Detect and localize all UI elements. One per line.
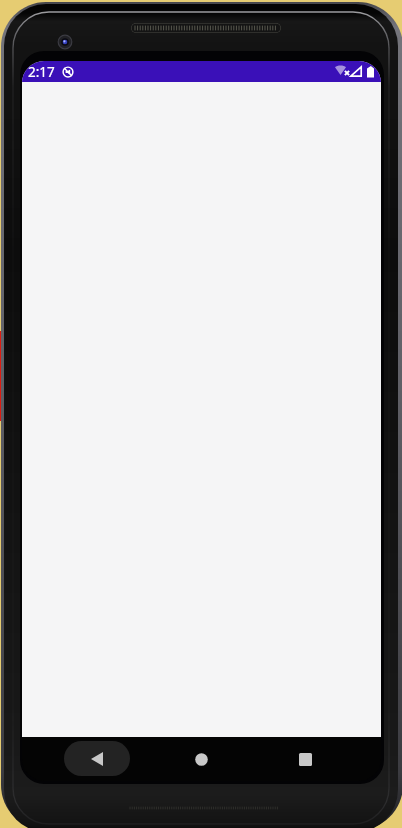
button[interactable]: Recent apps <box>283 737 327 781</box>
button[interactable]: Back <box>64 741 130 776</box>
button[interactable]: Home <box>179 737 223 781</box>
staticText: 2:17 <box>28 63 55 81</box>
